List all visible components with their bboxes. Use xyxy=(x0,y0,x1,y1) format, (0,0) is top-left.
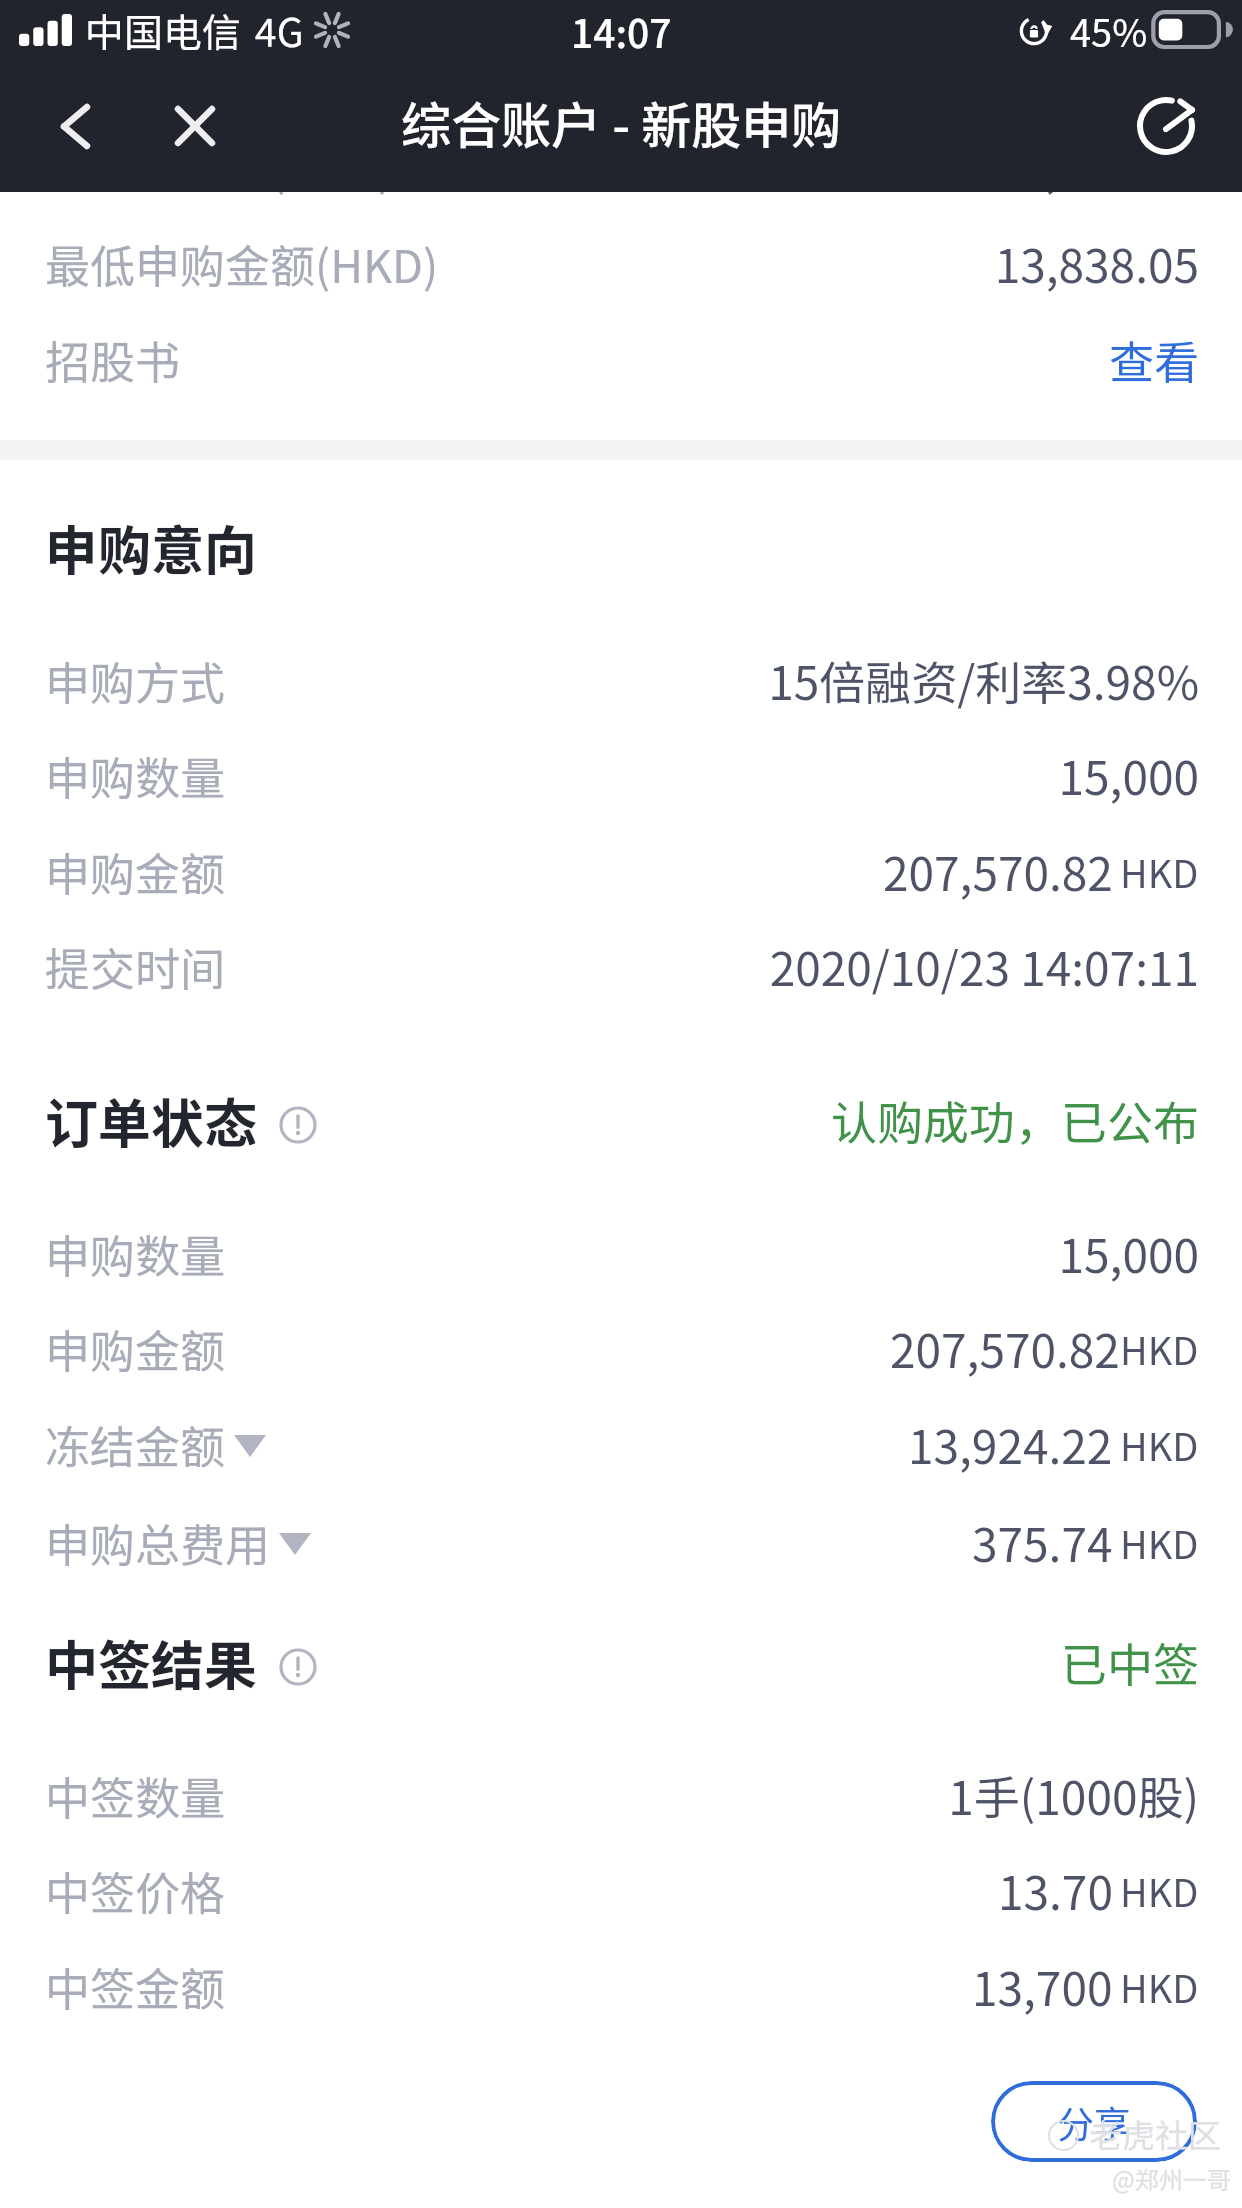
staticText: 375.74 xyxy=(972,1509,1113,1576)
staticText: 207,570.82 xyxy=(890,1315,1120,1382)
button[interactable] xyxy=(0,1605,1242,1719)
staticText: 申购总费用 xyxy=(45,1510,271,1575)
staticText: 最低申购金额(HKD) xyxy=(45,231,439,296)
staticText: 查看 xyxy=(1108,327,1199,392)
staticText: HKD xyxy=(1120,1515,1199,1570)
button[interactable]: Info xyxy=(279,1648,317,1686)
button[interactable] xyxy=(0,1842,1242,1938)
button[interactable]: Info xyxy=(279,1106,317,1144)
staticText: HKD xyxy=(1120,1959,1199,2014)
staticText: 申购金额 xyxy=(45,1316,226,1381)
staticText: 2020/10/23 14:07:11 xyxy=(769,933,1199,1000)
button[interactable] xyxy=(0,1494,1242,1590)
staticText: HKD xyxy=(1120,1863,1199,1918)
staticText: 中签结果 xyxy=(45,1624,257,1701)
staticText: 招股书 xyxy=(45,327,181,392)
button[interactable] xyxy=(0,1063,1242,1177)
button[interactable] xyxy=(0,311,1242,407)
staticText: 207,570.82 xyxy=(883,838,1113,905)
staticText: 45% xyxy=(1070,3,1148,58)
button[interactable] xyxy=(0,1396,1242,1492)
button[interactable]: Back xyxy=(40,91,110,161)
staticText: 老虎社区 xyxy=(1089,2110,1221,2158)
button[interactable] xyxy=(0,918,1242,1014)
button[interactable] xyxy=(0,118,1242,214)
staticText: 4G xyxy=(255,2,304,58)
staticText: 冻结金额 xyxy=(45,1412,226,1477)
staticText: 13,924.22 xyxy=(908,1411,1113,1478)
staticText: 订单状态 xyxy=(45,1082,257,1159)
staticText: HKD xyxy=(1120,1321,1199,1376)
staticText: 认购成功，已公布 xyxy=(831,1087,1199,1154)
staticText: 申购数量 xyxy=(45,743,226,808)
staticText: @郑州一哥 xyxy=(1112,2161,1231,2196)
staticText: 申购方式 xyxy=(45,648,226,713)
staticText: 13,838.05 xyxy=(994,133,1199,200)
button[interactable] xyxy=(0,215,1242,311)
staticText: 每手入场费(HKD) xyxy=(45,134,394,199)
button[interactable] xyxy=(0,632,1242,728)
staticText: 综合账户 - 新股申购 xyxy=(401,86,842,158)
staticText: 申购数量 xyxy=(45,1221,226,1286)
button[interactable] xyxy=(0,1747,1242,1843)
staticText: 15倍融资/利率3.98% xyxy=(768,647,1199,714)
staticText: HKD xyxy=(1120,1417,1199,1472)
staticText: 13,700 xyxy=(972,1953,1113,2020)
staticText: 13,838.05 xyxy=(994,230,1199,297)
staticText: 中签价格 xyxy=(45,1858,226,1923)
button[interactable] xyxy=(0,1938,1242,2034)
staticText: 申购金额 xyxy=(45,839,226,904)
staticText: 中签金额 xyxy=(45,1954,226,2019)
staticText: 14:07 xyxy=(571,3,672,59)
staticText: 已中签 xyxy=(1061,1629,1199,1696)
staticText: HKD xyxy=(1120,844,1199,899)
button[interactable] xyxy=(0,823,1242,919)
button[interactable] xyxy=(0,1205,1242,1301)
button[interactable] xyxy=(0,490,1242,604)
staticText: 中签数量 xyxy=(45,1763,226,1828)
button[interactable] xyxy=(0,727,1242,823)
staticText: 15,000 xyxy=(1058,1220,1199,1287)
button[interactable] xyxy=(0,1300,1242,1396)
button[interactable]: 分享 xyxy=(991,2081,1197,2162)
button[interactable]: Share xyxy=(1126,86,1206,166)
staticText: 中国电信 xyxy=(85,2,242,58)
staticText: 分享 xyxy=(1057,2095,1131,2149)
staticText: 13.70 xyxy=(998,1857,1113,1924)
button[interactable]: Close xyxy=(160,91,230,161)
staticText: 提交时间 xyxy=(45,934,226,999)
staticText: 1手(1000股) xyxy=(948,1762,1199,1829)
staticText: 15,000 xyxy=(1058,742,1199,809)
staticText: 申购意向 xyxy=(45,509,257,586)
